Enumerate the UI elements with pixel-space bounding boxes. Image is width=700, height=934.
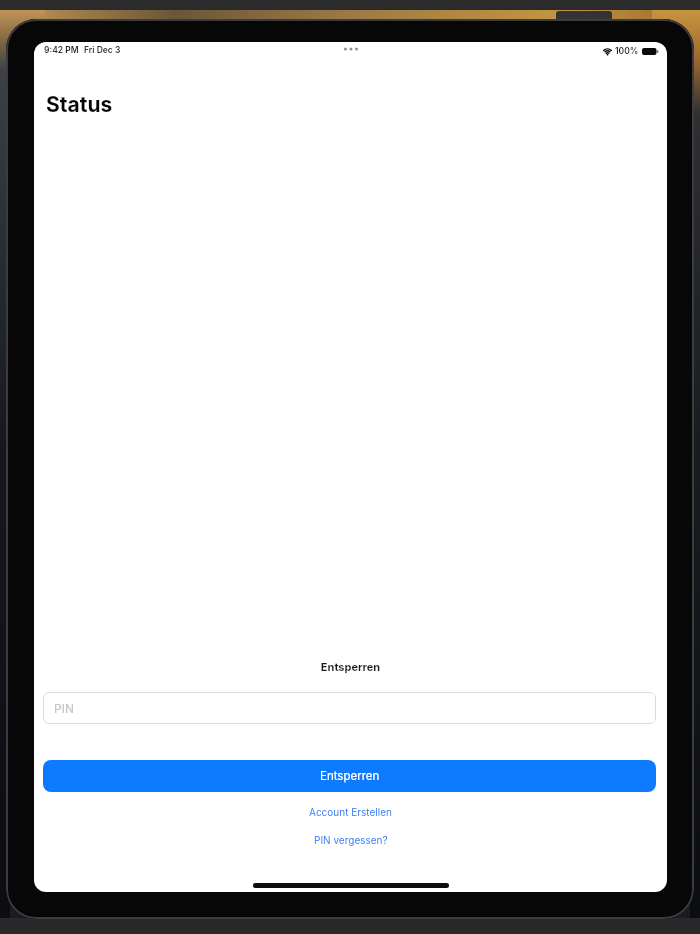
staticText: PIN: [54, 701, 74, 716]
staticText: Entsperren: [34, 660, 667, 673]
button[interactable]: PIN vergessen?: [314, 834, 388, 846]
staticText: 100%: [615, 46, 639, 56]
staticText: 9:42 PM: [44, 45, 79, 55]
staticText: Entsperren: [320, 769, 380, 783]
button[interactable]: Entsperren: [43, 760, 656, 792]
staticText: Fri Dec 3: [84, 45, 121, 55]
button[interactable]: Account Erstellen: [309, 806, 392, 818]
button[interactable]: PIN: [43, 692, 656, 724]
staticText: Status: [46, 92, 113, 117]
